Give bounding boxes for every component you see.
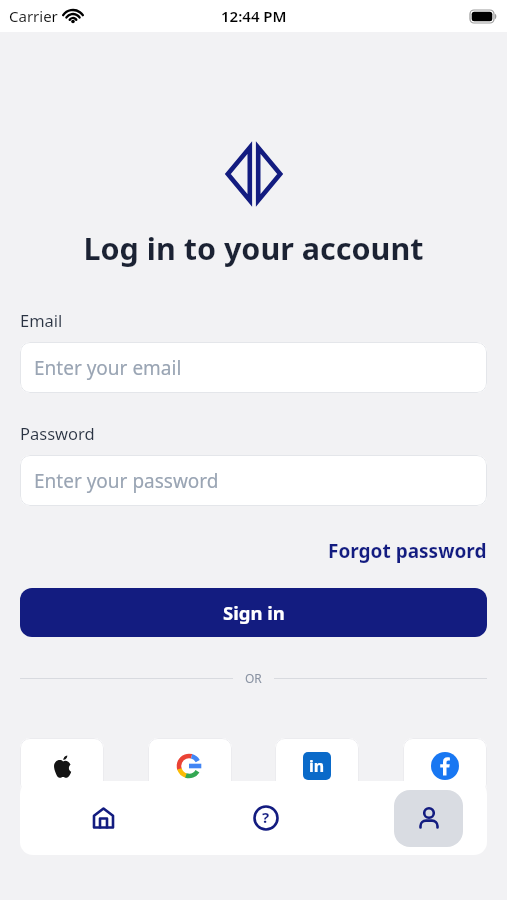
button[interactable]: ? (241, 793, 291, 843)
button[interactable]: Enter your password (20, 455, 487, 506)
button[interactable] (148, 738, 232, 794)
button[interactable] (403, 738, 487, 794)
staticText: Log in to your account (0, 227, 507, 269)
staticText: ? (262, 807, 270, 827)
staticText: Enter your email (34, 355, 182, 381)
staticText: OR (245, 670, 262, 686)
button[interactable] (394, 790, 463, 847)
staticText: Email (20, 309, 63, 331)
staticText: Sign in (223, 600, 285, 625)
button[interactable]: Sign in (20, 588, 487, 637)
button[interactable] (20, 738, 104, 794)
button[interactable]: Enter your email (20, 342, 487, 393)
staticText: Enter your password (34, 468, 219, 494)
staticText: Carrier (9, 6, 58, 26)
button[interactable]: in (275, 738, 359, 794)
staticText: 12:44 PM (221, 6, 287, 26)
staticText: Password (20, 422, 95, 444)
staticText: in (309, 755, 325, 777)
button[interactable]: Forgot password (328, 538, 487, 564)
button[interactable] (78, 793, 128, 843)
